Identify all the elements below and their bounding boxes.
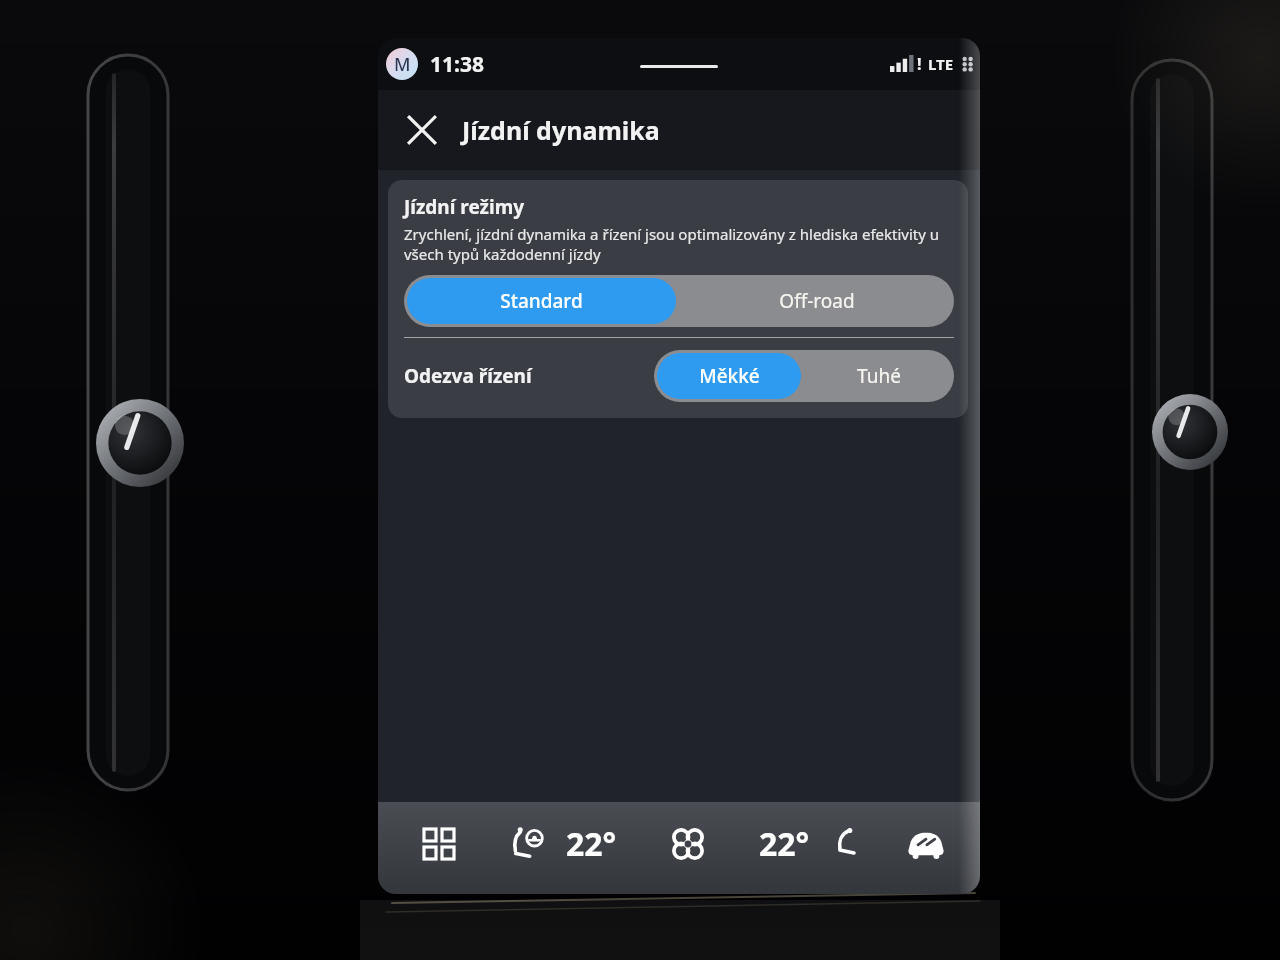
staticText: M (394, 52, 411, 77)
button[interactable]: Off-road (682, 278, 951, 324)
staticText: 11:38 (430, 50, 484, 79)
button[interactable]: Fan (660, 816, 716, 872)
button[interactable]: 22° (560, 816, 623, 872)
staticText: Tuhé (857, 363, 901, 389)
button[interactable]: Passenger seat climate (820, 819, 870, 869)
staticText: LTE (928, 54, 954, 74)
staticText: Standard (500, 288, 583, 314)
button[interactable]: Standard (407, 278, 676, 324)
staticText: Jízdní režimy (404, 194, 525, 220)
staticText: 22° (566, 822, 617, 866)
staticText: Měkké (699, 363, 760, 389)
button[interactable]: 22° (753, 816, 816, 872)
staticText: 22° (759, 822, 810, 866)
staticText: Jízdní dynamika (462, 113, 660, 147)
staticText: Off-road (779, 288, 855, 314)
button[interactable]: Apps (412, 817, 466, 871)
button[interactable]: Měkké (657, 353, 801, 399)
staticText: ! (917, 53, 922, 75)
button[interactable]: Car climate (898, 816, 954, 872)
button[interactable]: Close (398, 106, 446, 154)
button[interactable]: Driver seat climate (500, 817, 554, 871)
button[interactable]: Profile (386, 48, 418, 80)
staticText: Odezva řízení (404, 363, 532, 389)
button[interactable]: Tuhé (807, 353, 951, 399)
staticText: Zrychlení, jízdní dynamika a řízení jsou… (404, 224, 954, 264)
